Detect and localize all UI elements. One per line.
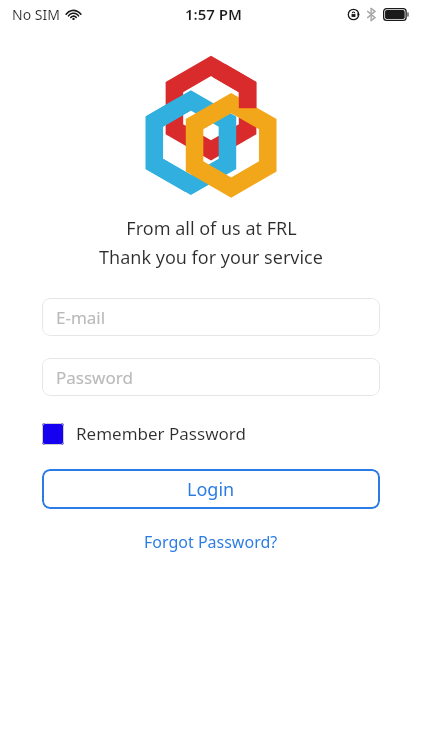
staticText: E-mail — [56, 306, 106, 329]
staticText: Forgot Password? — [144, 531, 278, 553]
button[interactable]: Password — [42, 358, 380, 396]
staticText: From all of us at FRL — [126, 216, 297, 241]
button[interactable]: E-mail — [42, 298, 380, 336]
staticText: Remember Password — [76, 422, 246, 445]
button[interactable]: Forgot Password? — [138, 527, 284, 557]
staticText: Password — [56, 366, 133, 389]
staticText: No SIM — [12, 5, 60, 24]
staticText: 1:57 PM — [185, 4, 242, 24]
staticText: Thank you for your service — [99, 245, 323, 270]
button[interactable]: Remember Password — [42, 418, 246, 449]
staticText: Login — [187, 477, 235, 502]
button[interactable]: Login — [42, 469, 380, 509]
